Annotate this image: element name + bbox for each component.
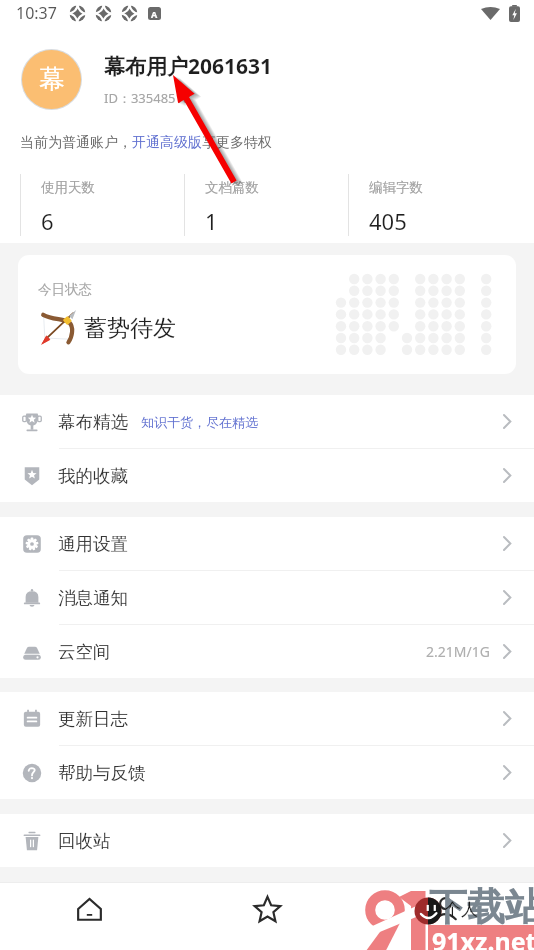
staticText: 2.21M/1G [426,642,490,661]
staticText: 6 [41,206,54,236]
staticText: 我的收藏 [58,465,128,487]
staticText: A [151,8,158,20]
button[interactable]: 幕布精选 [0,395,534,448]
button[interactable]: Favorites [178,882,356,950]
button[interactable]: 回收站 [0,814,534,867]
button[interactable]: 云空间 [0,625,534,678]
staticText: ID：33548518 [104,89,191,107]
button[interactable]: 通用设置 [0,517,534,570]
staticText: 文档篇数 [205,179,259,196]
staticText: 幕布用户2061631 [104,52,273,81]
button[interactable]: 消息通知 [0,571,534,624]
staticText: 10:37 [16,2,57,24]
staticText: 幕布精选 [58,411,128,433]
button[interactable]: Home [0,882,178,950]
button[interactable]: Profile [356,882,534,950]
staticText: 云空间 [58,641,111,663]
staticText: 编辑字数 [369,179,423,196]
staticText: 下载站 [429,883,534,931]
button[interactable]: 今日状态 [18,255,516,374]
staticText: 405 [369,206,407,236]
staticText: 91xz.net [432,924,534,950]
staticText: 蓄势待发 [84,314,176,343]
staticText: 消息通知 [58,587,128,609]
staticText: 今日状态 [38,281,92,298]
button[interactable]: 帮助与反馈 [0,746,534,799]
staticText: 当前为普通账户，开通高级版享更多特权 [20,134,272,152]
staticText: 更新日志 [58,708,128,730]
staticText: 帮助与反馈 [58,762,146,784]
staticText: 知识干货，尽在精选 [141,414,258,430]
staticText: 1 [205,206,218,236]
staticText: 幕 [39,63,65,96]
staticText: 通用设置 [58,533,128,555]
staticText: 回收站 [58,830,111,852]
button[interactable]: 我的收藏 [0,449,534,502]
staticText: 使用天数 [41,179,95,196]
button[interactable]: 更新日志 [0,692,534,745]
staticText: 个人 [444,899,478,920]
